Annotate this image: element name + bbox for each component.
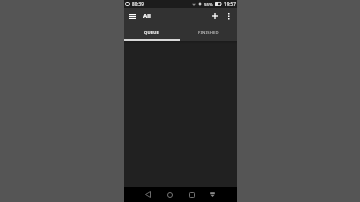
staticText: FINISHED — [198, 30, 219, 36]
button[interactable]: More options — [222, 8, 235, 24]
button[interactable]: Add — [207, 8, 222, 24]
staticText: QUEUE — [144, 30, 160, 36]
staticText: 19:57 — [224, 1, 236, 7]
button[interactable]: Recent apps — [186, 187, 198, 202]
button[interactable]: Home — [164, 187, 176, 202]
staticText: All — [143, 12, 151, 20]
button[interactable]: FINISHED — [180, 24, 237, 39]
button[interactable]: Back — [142, 187, 154, 202]
staticText: 80:39 — [132, 1, 144, 7]
button[interactable]: QUEUE — [124, 24, 180, 39]
button[interactable]: Screenshot — [206, 187, 218, 202]
staticText: 55% — [204, 1, 213, 7]
button[interactable]: Navigation drawer — [126, 8, 139, 24]
